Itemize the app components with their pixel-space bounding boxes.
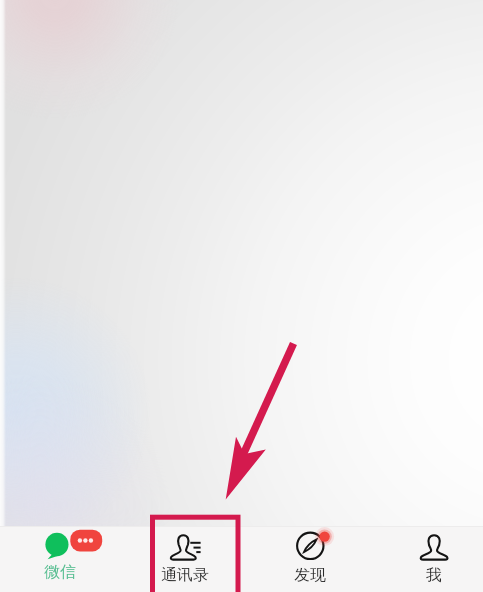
staticText: 微信 bbox=[44, 562, 76, 582]
button[interactable]: Discover bbox=[247, 527, 372, 592]
staticText: 通讯录 bbox=[161, 565, 209, 585]
staticText: 我 bbox=[426, 565, 442, 585]
button[interactable]: WeChat chats bbox=[0, 527, 122, 592]
button[interactable]: Contacts bbox=[122, 527, 247, 592]
staticText: 发现 bbox=[294, 565, 326, 585]
button[interactable]: Me bbox=[372, 527, 483, 592]
